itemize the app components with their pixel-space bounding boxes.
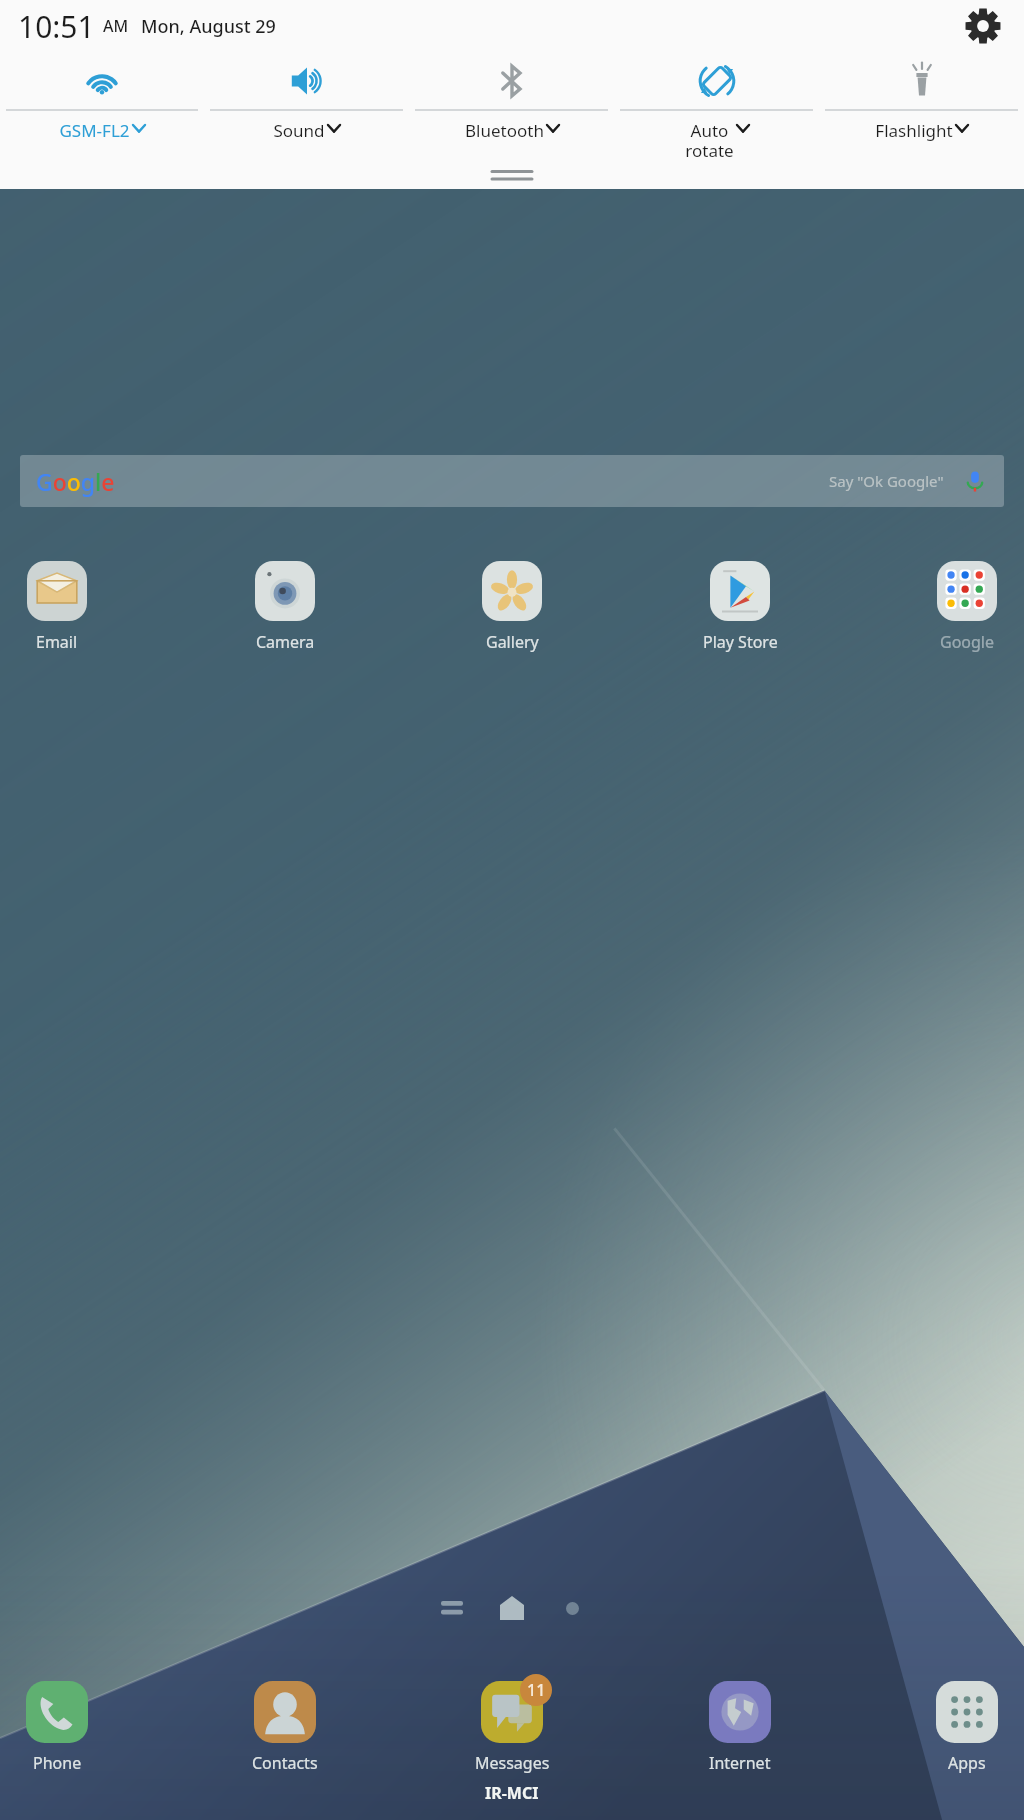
button[interactable]: Auto rotate: [614, 52, 819, 170]
staticText: Messages: [475, 1752, 550, 1774]
staticText: Contacts: [252, 1752, 318, 1774]
button[interactable]: Google: [924, 557, 1010, 655]
staticText: Auto rotate: [685, 119, 734, 162]
button[interactable]: Play Store: [697, 557, 783, 655]
button[interactable]: GSM-FL2: [0, 52, 204, 170]
button[interactable]: Internet: [697, 1678, 783, 1776]
button[interactable]: Page 2: [558, 1594, 586, 1622]
button[interactable]: Feed page: [438, 1594, 466, 1622]
button[interactable]: Gallery: [469, 557, 555, 655]
button[interactable]: Phone: [14, 1678, 100, 1776]
staticText: Flashlight: [875, 119, 953, 142]
staticText: Google: [940, 631, 995, 653]
button[interactable]: Apps: [924, 1678, 1010, 1776]
staticText: AM: [103, 15, 129, 37]
button[interactable]: Settings: [962, 5, 1004, 47]
staticText: Google: [36, 466, 115, 497]
button[interactable]: Google: [20, 455, 1004, 507]
button[interactable]: Camera: [242, 557, 328, 655]
button[interactable]: Voice search: [962, 468, 988, 494]
button[interactable]: Flashlight: [819, 52, 1024, 170]
button[interactable]: 11: [469, 1678, 555, 1776]
staticText: Email: [36, 631, 78, 653]
staticText: Internet: [709, 1752, 771, 1774]
staticText: Bluetooth: [465, 119, 544, 142]
button[interactable]: Contacts: [242, 1678, 328, 1776]
button[interactable]: Email: [14, 557, 100, 655]
staticText: IR-MCI: [485, 1782, 539, 1804]
button[interactable]: Sound: [204, 52, 409, 170]
staticText: Camera: [256, 631, 315, 653]
staticText: 11: [527, 1679, 546, 1701]
staticText: Sound: [273, 119, 325, 142]
staticText: Gallery: [486, 631, 539, 653]
button[interactable]: Bluetooth: [409, 52, 614, 170]
staticText: Apps: [948, 1752, 986, 1774]
button[interactable]: Home page: [498, 1594, 526, 1622]
staticText: Say "Ok Google": [829, 471, 944, 491]
staticText: Phone: [33, 1752, 82, 1774]
staticText: Mon, August 29: [141, 14, 276, 39]
staticText: GSM-FL2: [59, 119, 130, 142]
staticText: 10:51: [18, 6, 95, 47]
staticText: Play Store: [703, 631, 778, 653]
